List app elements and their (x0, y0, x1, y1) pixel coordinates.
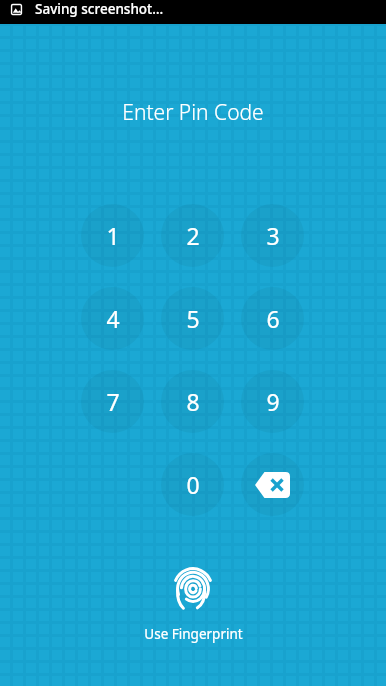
staticText: 0 (186, 469, 200, 500)
staticText: 5 (186, 303, 200, 334)
staticText: 9 (266, 386, 280, 417)
staticText: 1 (106, 220, 120, 251)
staticText: Enter Pin Code (0, 98, 386, 127)
button[interactable]: Backspace (241, 453, 304, 516)
staticText: Saving screenshot… (35, 0, 164, 18)
button[interactable]: 1 (81, 204, 144, 267)
staticText: 6 (266, 303, 280, 334)
staticText: 2 (186, 220, 200, 251)
button[interactable]: 2 (161, 204, 224, 267)
button[interactable]: 5 (161, 287, 224, 350)
button[interactable]: 7 (81, 370, 144, 433)
button[interactable]: 8 (161, 370, 224, 433)
staticText: 7 (106, 386, 120, 417)
button[interactable]: 0 (161, 453, 224, 516)
button[interactable]: 3 (241, 204, 304, 267)
button[interactable]: 4 (81, 287, 144, 350)
staticText: Use Fingerprint (144, 625, 243, 643)
staticText: 3 (266, 220, 280, 251)
button[interactable]: 6 (241, 287, 304, 350)
staticText: 8 (186, 386, 200, 417)
staticText: 4 (106, 303, 120, 334)
button[interactable]: 9 (241, 370, 304, 433)
button[interactable]: Use Fingerprint (163, 558, 223, 618)
